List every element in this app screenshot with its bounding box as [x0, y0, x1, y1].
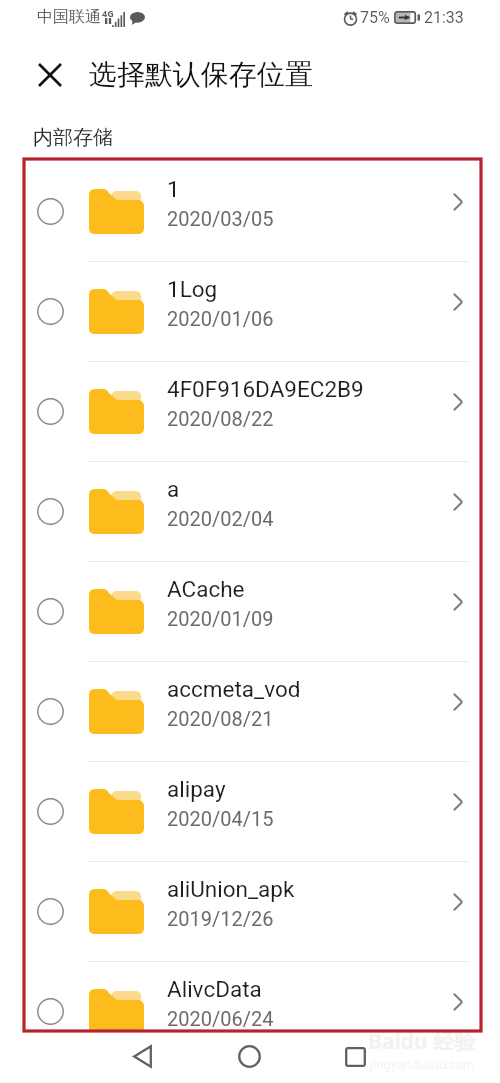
- staticText: 4F0F916DA9EC2B9: [167, 376, 364, 402]
- staticText: 2020/06/24: [167, 1007, 274, 1030]
- button[interactable]: 4F0F916DA9EC2B9: [0, 361, 500, 461]
- staticText: 2020/04/15: [167, 807, 274, 830]
- staticText: 内部存储: [33, 125, 113, 150]
- staticText: ACache: [167, 576, 245, 602]
- staticText: aliUnion_apk: [167, 876, 295, 902]
- staticText: 2020/01/06: [167, 307, 274, 330]
- staticText: 选择默认保存位置: [89, 57, 313, 92]
- staticText: AlivcData: [167, 976, 262, 1002]
- staticText: 4G: [102, 7, 114, 19]
- staticText: 2020/01/09: [167, 607, 274, 630]
- staticText: 1: [167, 176, 180, 202]
- button[interactable]: AlivcData: [0, 961, 500, 1031]
- staticText: accmeta_vod: [167, 676, 301, 702]
- staticText: 75%: [360, 8, 390, 27]
- button[interactable]: 1Log: [0, 261, 500, 361]
- button[interactable]: Close: [28, 53, 72, 97]
- button[interactable]: a: [0, 461, 500, 561]
- staticText: 21:33: [424, 8, 464, 27]
- button[interactable]: ACache: [0, 561, 500, 661]
- button[interactable]: accmeta_vod: [0, 661, 500, 761]
- button[interactable]: 1: [0, 161, 500, 261]
- button[interactable]: Back: [119, 1033, 166, 1080]
- button[interactable]: alipay: [0, 761, 500, 861]
- staticText: 2020/08/22: [167, 407, 274, 430]
- staticText: 1Log: [167, 276, 218, 302]
- staticText: 2020/08/21: [167, 707, 274, 730]
- button[interactable]: aliUnion_apk: [0, 861, 500, 961]
- staticText: 中国联通: [37, 7, 101, 27]
- staticText: 2020/03/05: [167, 207, 274, 230]
- staticText: 2019/12/26: [167, 907, 274, 930]
- staticText: alipay: [167, 776, 226, 802]
- button[interactable]: Home: [226, 1033, 273, 1080]
- staticText: jingyan.baidu.com: [370, 1056, 474, 1072]
- staticText: Baidu 经验: [368, 1027, 476, 1056]
- button[interactable]: Recents: [332, 1033, 379, 1080]
- staticText: 2020/02/04: [167, 507, 274, 530]
- staticText: a: [167, 476, 180, 502]
